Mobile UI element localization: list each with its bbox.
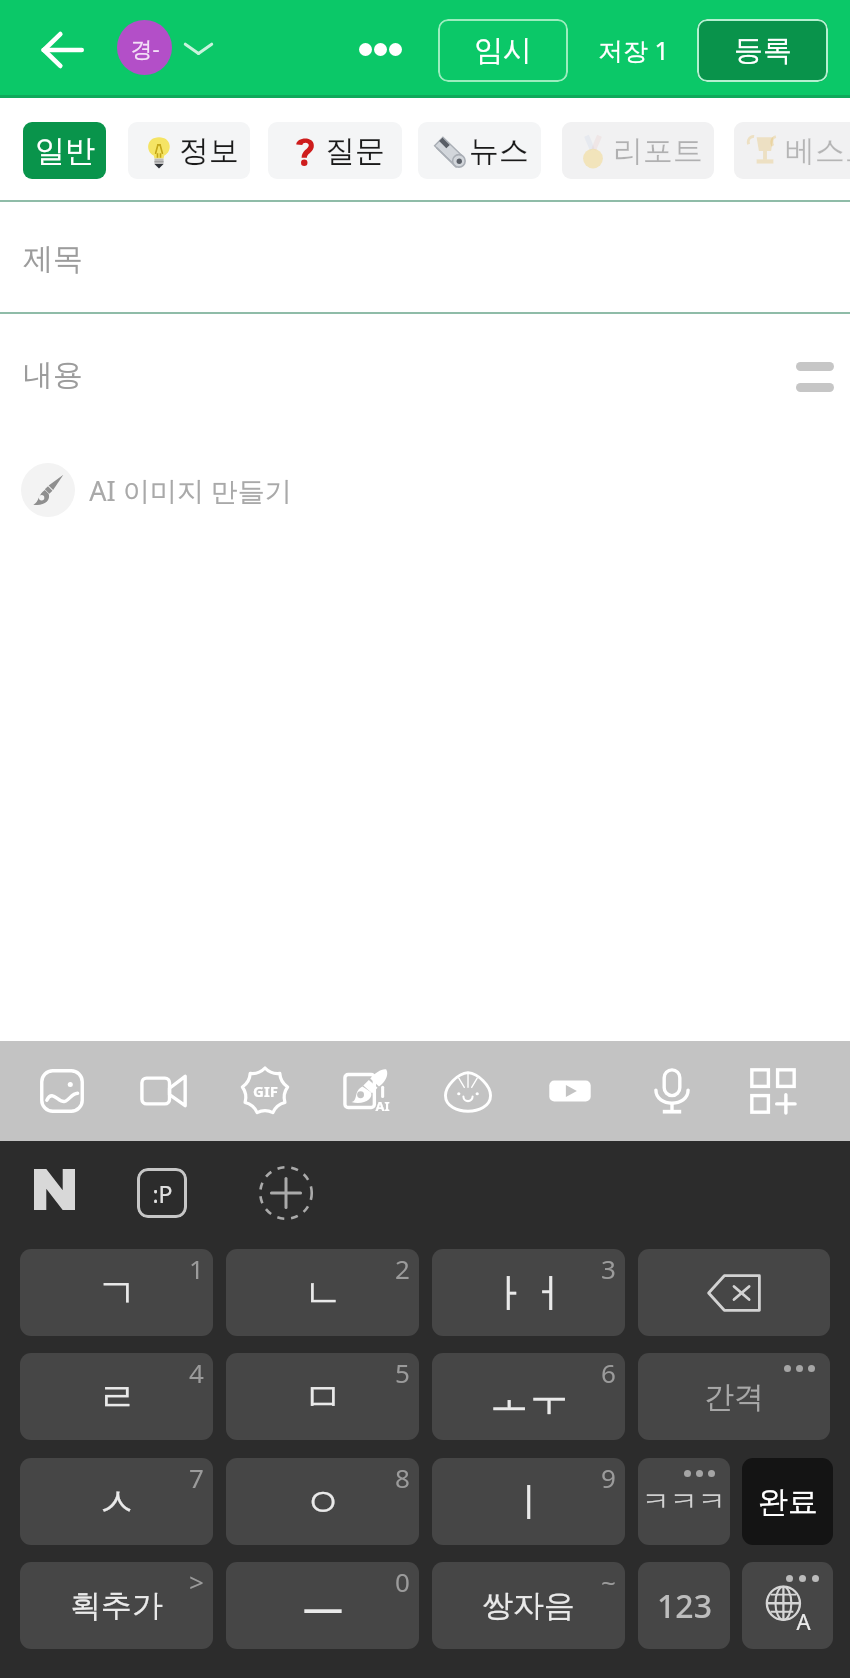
staticText: 123 — [657, 1584, 712, 1628]
staticText: 간격 — [704, 1378, 764, 1416]
button[interactable]: ㅅ — [20, 1458, 213, 1545]
staticText: AI — [375, 1097, 390, 1115]
staticText: 획추가 — [70, 1586, 163, 1625]
button[interactable]: 질문 — [268, 122, 402, 179]
staticText: 2 — [395, 1251, 410, 1286]
staticText: 3 — [601, 1251, 616, 1286]
staticText: ~ — [601, 1564, 616, 1599]
button[interactable]: 경- — [117, 20, 215, 75]
button[interactable]: Backspace — [638, 1249, 830, 1336]
button[interactable]: 간격 — [638, 1353, 830, 1440]
button[interactable]: AI 이미지 만들기 — [21, 462, 292, 518]
button[interactable]: sticker — [431, 1054, 505, 1128]
button[interactable]: Reorder — [786, 348, 843, 406]
staticText: :P — [152, 1178, 173, 1209]
staticText: ㅇ — [303, 1477, 343, 1527]
staticText: > — [189, 1564, 204, 1599]
button[interactable]: 일반 — [23, 122, 106, 179]
button[interactable]: video — [127, 1054, 201, 1128]
staticText: ㄹ — [97, 1372, 137, 1422]
button[interactable]: ㅗㅜ — [432, 1353, 625, 1440]
staticText: 베스트 — [785, 132, 850, 170]
button[interactable]: 임시 — [438, 19, 568, 82]
staticText: 0 — [395, 1564, 410, 1599]
button[interactable]: ㅇ — [226, 1458, 419, 1545]
staticText: ㅗㅜ — [489, 1372, 569, 1422]
button[interactable]: 리포트 — [562, 122, 714, 179]
staticText: 9 — [601, 1460, 616, 1495]
button[interactable]: gif — [228, 1054, 302, 1128]
button[interactable]: ㄹ — [20, 1353, 213, 1440]
staticText: 5 — [395, 1355, 410, 1390]
button[interactable]: Emoji — [128, 1159, 196, 1227]
staticText: 내용 — [23, 356, 83, 394]
staticText: ㅣ — [509, 1477, 549, 1527]
staticText: 경- — [130, 33, 160, 63]
button[interactable]: youtube — [533, 1054, 607, 1128]
staticText: ㅅ — [97, 1477, 137, 1527]
button[interactable]: aidraw — [330, 1054, 404, 1128]
button[interactable]: 완료 — [742, 1458, 833, 1545]
staticText: A — [796, 1606, 811, 1636]
staticText: ㄱ — [97, 1268, 137, 1318]
button[interactable]: 쌍자음 — [432, 1562, 625, 1649]
staticText: 저장 1 — [598, 33, 669, 67]
button[interactable]: 123 — [638, 1562, 730, 1649]
staticText: 뉴스 — [469, 132, 529, 170]
button[interactable]: ㅣ — [432, 1458, 625, 1545]
staticText: 제목 — [23, 240, 83, 278]
staticText: 7 — [189, 1460, 204, 1495]
staticText: ㅁ — [303, 1372, 343, 1422]
staticText: ㄴ — [303, 1268, 343, 1318]
staticText: AI 이미지 만들기 — [89, 472, 292, 509]
staticText: ㅋㅋㅋ — [642, 1484, 726, 1519]
staticText: 정보 — [179, 132, 239, 170]
button[interactable]: Naver — [20, 1155, 88, 1223]
staticText: 일반 — [35, 132, 95, 170]
staticText: GIF — [253, 1081, 278, 1101]
button[interactable]: 베스트 — [734, 122, 850, 179]
button[interactable]: ㅋㅋㅋ — [638, 1458, 730, 1545]
staticText: 1 — [189, 1251, 204, 1286]
button[interactable]: ㄱ — [20, 1249, 213, 1336]
button[interactable]: 획추가 — [20, 1562, 213, 1649]
staticText: 6 — [601, 1355, 616, 1390]
button[interactable]: — — [226, 1562, 419, 1649]
staticText: — — [303, 1579, 343, 1633]
staticText: 질문 — [325, 132, 385, 170]
staticText: ㅏㅓ — [489, 1268, 569, 1318]
button[interactable]: ㅁ — [226, 1353, 419, 1440]
button[interactable]: More options — [345, 23, 415, 75]
staticText: 등록 — [734, 32, 792, 69]
button[interactable]: 정보 — [128, 122, 250, 179]
staticText: 쌍자음 — [482, 1586, 575, 1625]
staticText: 8 — [395, 1460, 410, 1495]
button[interactable]: more — [736, 1054, 810, 1128]
staticText: 4 — [189, 1355, 204, 1390]
button[interactable]: ㄴ — [226, 1249, 419, 1336]
staticText: 리포트 — [613, 132, 703, 170]
staticText: 임시 — [474, 32, 532, 69]
button[interactable]: Add — [252, 1159, 320, 1227]
button[interactable]: Back — [28, 16, 96, 84]
button[interactable]: photo — [25, 1054, 99, 1128]
button[interactable]: 뉴스 — [418, 122, 541, 179]
button[interactable]: 등록 — [697, 19, 828, 82]
button[interactable]: mic — [635, 1054, 709, 1128]
button[interactable]: ㅏㅓ — [432, 1249, 625, 1336]
staticText: 완료 — [758, 1483, 818, 1521]
button[interactable]: Change language — [742, 1562, 833, 1649]
button[interactable]: 저장 1 — [598, 33, 669, 67]
